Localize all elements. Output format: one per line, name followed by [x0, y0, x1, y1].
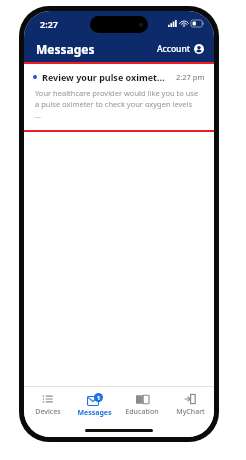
- staticText: Devices: [35, 407, 61, 417]
- staticText: Messages: [77, 408, 112, 418]
- staticText: Messages: [36, 41, 95, 57]
- button[interactable]: Messages: [71, 387, 118, 423]
- staticText: 1: [97, 394, 101, 401]
- button[interactable]: Devices: [24, 387, 71, 423]
- staticText: 2:27 pm: [176, 72, 205, 82]
- other: MyChart: [184, 393, 196, 405]
- button[interactable]: Education: [118, 387, 166, 423]
- other: Messages: [87, 393, 103, 406]
- staticText: 2:27: [40, 18, 58, 30]
- staticText: Account: [157, 43, 191, 55]
- other: Education: [136, 394, 149, 405]
- other: Devices: [42, 393, 54, 405]
- staticText: Your healthcare provider would like you …: [35, 88, 199, 120]
- staticText: MyChart: [176, 407, 205, 417]
- other: Account: [194, 44, 204, 54]
- button[interactable]: MyChart: [166, 387, 214, 423]
- staticText: Education: [125, 407, 159, 417]
- button[interactable]: Review your pulse oximet…: [24, 64, 214, 130]
- staticText: Review your pulse oximet…: [42, 71, 176, 83]
- button[interactable]: Account: [157, 43, 204, 55]
